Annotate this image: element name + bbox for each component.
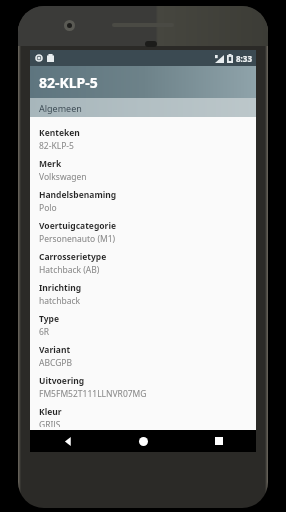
button[interactable]: 82-KLP-5 <box>30 66 256 98</box>
button[interactable]: Kenteken <box>30 124 256 155</box>
staticText: 82-KLP-5 <box>39 140 74 152</box>
staticText: Variant <box>39 344 71 356</box>
staticText: Handelsbenaming <box>39 189 117 201</box>
staticText: 82-KLP-5 <box>39 73 98 92</box>
staticText: Algemeen <box>39 102 82 114</box>
staticText: Volkswagen <box>39 171 87 183</box>
button[interactable]: Home <box>106 430 181 452</box>
staticText: Polo <box>39 202 57 214</box>
staticText: FM5FM52T111LLNVR07MG <box>39 388 147 400</box>
staticText: Kenteken <box>39 127 80 139</box>
button[interactable]: Inrichting <box>30 279 256 310</box>
button[interactable]: Uitvoering <box>30 372 256 403</box>
button[interactable]: Handelsbenaming <box>30 186 256 217</box>
staticText: Kleur <box>39 406 62 418</box>
staticText: Voertuigcategorie <box>39 220 117 232</box>
staticText: Merk <box>39 158 62 170</box>
staticText: 8:33 <box>236 53 252 64</box>
button[interactable]: Variant <box>30 341 256 372</box>
button[interactable]: Merk <box>30 155 256 186</box>
staticText: GRIJS <box>39 419 61 427</box>
staticText: Uitvoering <box>39 375 85 387</box>
staticText: Hatchback (AB) <box>39 264 100 276</box>
staticText: Inrichting <box>39 282 82 294</box>
staticText: hatchback <box>39 295 81 307</box>
staticText: ABCGPB <box>39 357 73 369</box>
staticText: Type <box>39 313 60 325</box>
staticText: Personenauto (M1) <box>39 233 116 245</box>
button[interactable]: Back <box>30 430 106 452</box>
button[interactable]: Recent apps <box>181 430 256 452</box>
button[interactable]: Carrosserietype <box>30 248 256 279</box>
button[interactable]: Voertuigcategorie <box>30 217 256 248</box>
button[interactable]: Kleur <box>30 403 256 430</box>
staticText: 6R <box>39 326 50 338</box>
staticText: Carrosserietype <box>39 251 107 263</box>
button[interactable]: Type <box>30 310 256 341</box>
